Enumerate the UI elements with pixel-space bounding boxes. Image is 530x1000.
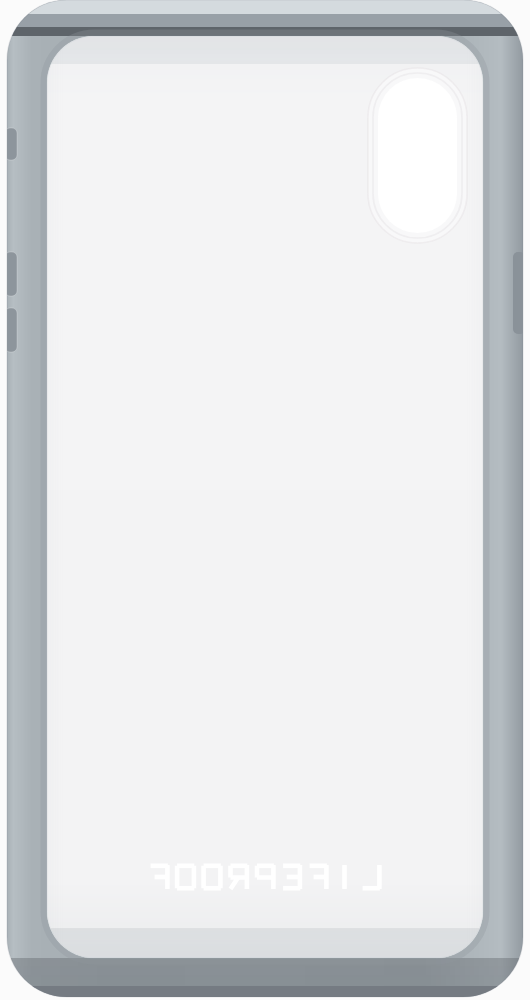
button[interactable]: LifeProof phone case product photo bbox=[0, 0, 530, 1000]
